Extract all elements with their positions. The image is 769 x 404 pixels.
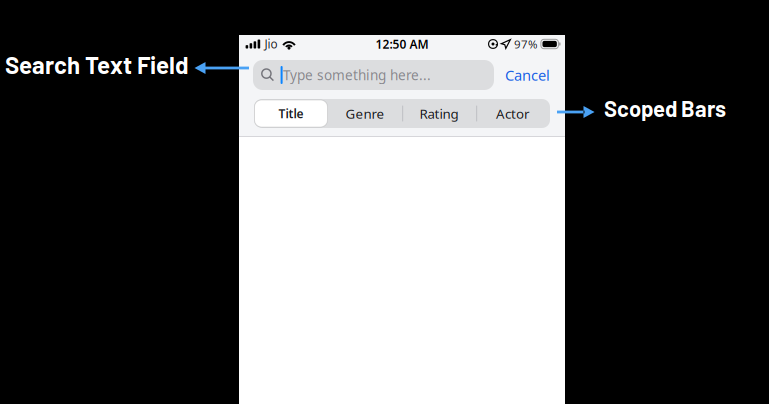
button[interactable]: Actor	[476, 99, 550, 128]
staticText: Rating	[419, 105, 458, 122]
staticText: Cancel	[505, 65, 550, 85]
staticText: Actor	[496, 105, 530, 122]
staticText: Search Text Field	[5, 50, 189, 79]
button[interactable]: Genre	[328, 99, 402, 128]
button[interactable]: Title	[254, 99, 328, 128]
staticText: Title	[278, 105, 303, 121]
staticText: Jio	[264, 36, 277, 52]
button[interactable]: Type something here...	[253, 60, 494, 90]
button[interactable]: Rating	[402, 99, 476, 128]
staticText: 12:50 AM	[375, 36, 428, 52]
staticText: Type something here...	[283, 66, 431, 84]
button[interactable]: Cancel	[494, 60, 550, 90]
staticText: Genre	[345, 105, 384, 122]
staticText: 97%	[514, 36, 538, 52]
staticText: Scoped Bars	[604, 95, 726, 121]
